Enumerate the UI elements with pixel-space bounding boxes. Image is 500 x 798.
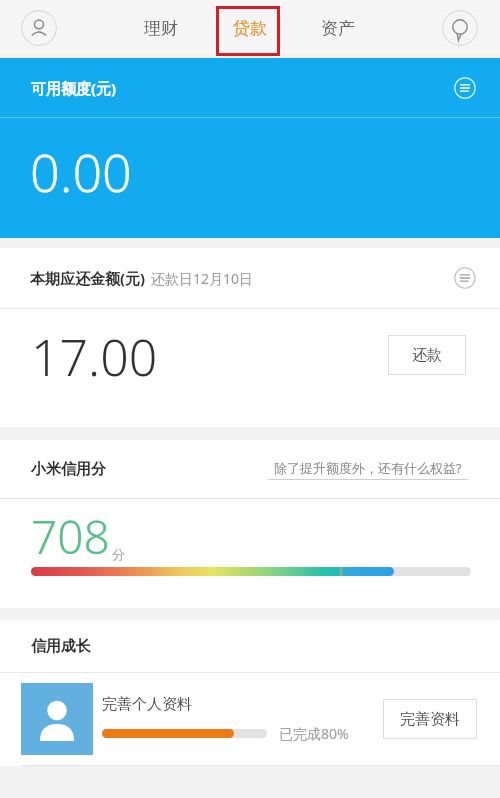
staticText: 贷款 [233,18,267,39]
staticText: 资产 [321,18,355,39]
button[interactable]: 理财 [129,3,193,53]
staticText: 完善个人资料 [102,695,192,714]
button[interactable]: 还款 [388,335,466,375]
button[interactable]: 信用成长 [0,620,500,672]
staticText: 分 [112,546,125,562]
staticText: 理财 [144,18,178,39]
button[interactable]: Profile [21,10,57,46]
staticText: 已完成80% [279,724,349,743]
button[interactable]: Bill details [452,265,478,291]
button[interactable]: 资产 [306,3,370,53]
staticText: 0.00 [30,136,132,207]
button[interactable]: 贷款 [218,3,282,53]
button[interactable]: 可用额度(元) [0,58,500,117]
button[interactable]: 完善个人资料 [0,673,500,765]
staticText: 信用成长 [31,637,91,656]
button[interactable]: 本期应还金额(元) [0,248,500,308]
button[interactable]: 完善资料 [383,699,477,739]
staticText: 还款 [412,346,442,365]
staticText: 708 [31,505,110,568]
staticText: 小米信用分 [31,460,106,479]
staticText: 可用额度(元) [31,78,117,98]
button[interactable]: 除了提升额度外，还有什么权益? [268,459,468,480]
button[interactable]: Chat [442,10,478,46]
button[interactable]: 小米信用分 [0,440,500,498]
staticText: 17.00 [31,323,158,391]
button[interactable]: Details [452,75,478,101]
staticText: 本期应还金额(元) [30,268,146,288]
staticText: 还款日12月10日 [151,269,254,288]
staticText: 完善资料 [400,710,460,729]
staticText: 除了提升额度外，还有什么权益? [274,459,462,477]
